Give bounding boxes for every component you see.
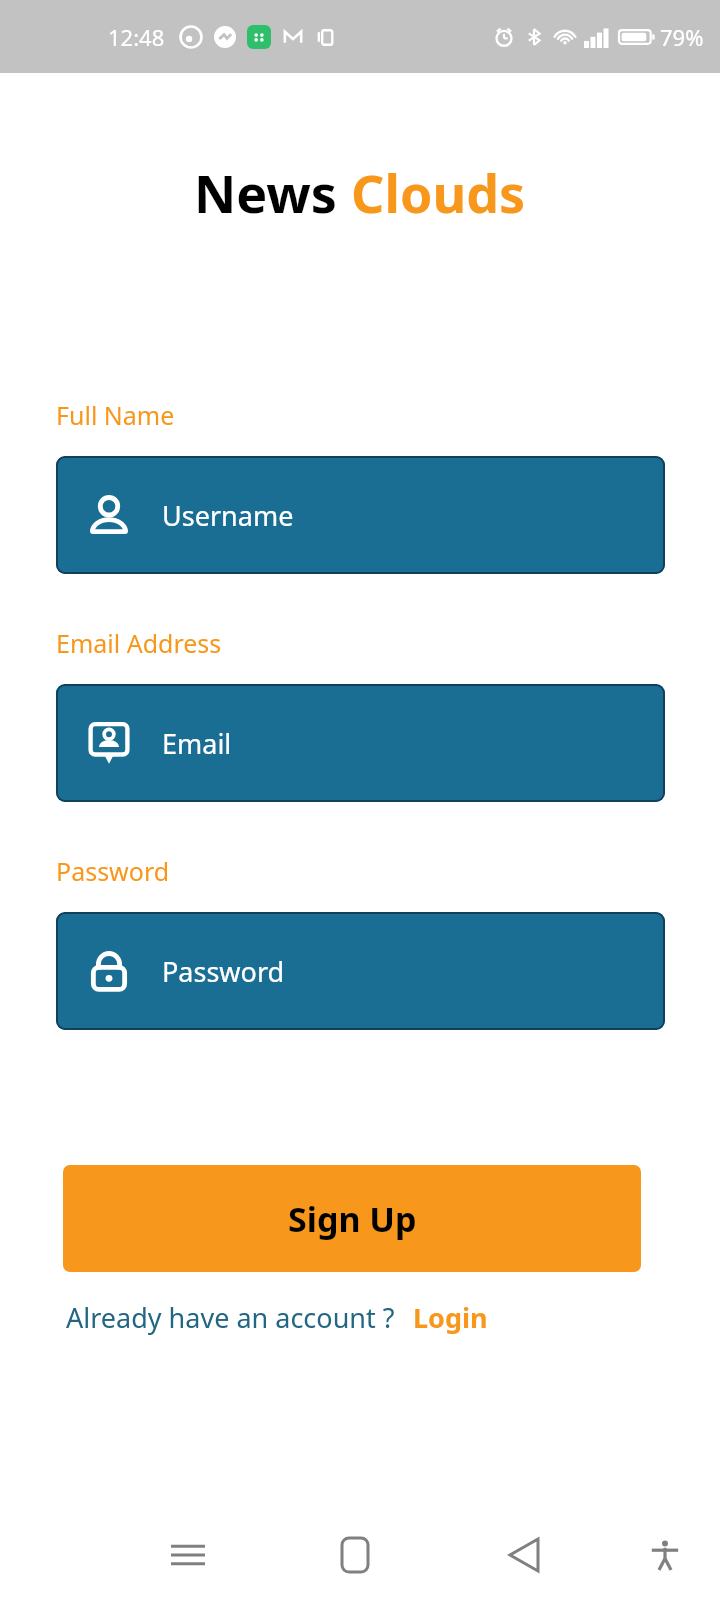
button[interactable]: Email [56,684,665,802]
button[interactable]: Password [56,912,665,1030]
button[interactable]: Recent apps [154,1521,222,1589]
staticText: Email [162,725,232,762]
staticText: Clouds [351,157,526,228]
button[interactable]: Accessibility [631,1521,699,1589]
staticText: Login [413,1299,488,1336]
button[interactable]: Already have an account ? [66,1299,395,1336]
button[interactable]: Username [56,456,665,574]
staticText: Sign Up [288,1196,417,1242]
button[interactable]: Sign Up [63,1165,641,1272]
staticText: Password [56,854,170,888]
staticText: Email Address [56,626,222,660]
staticText: News [194,157,351,228]
staticText: Username [162,497,294,534]
button[interactable]: Login [413,1299,488,1336]
staticText: 12:48 [108,22,165,52]
button[interactable]: Back [490,1521,558,1589]
staticText: 79% [660,22,704,52]
button[interactable]: Home [321,1521,389,1589]
staticText: Already have an account ? [66,1299,395,1336]
staticText: Password [162,953,285,990]
staticText: Full Name [56,398,175,432]
